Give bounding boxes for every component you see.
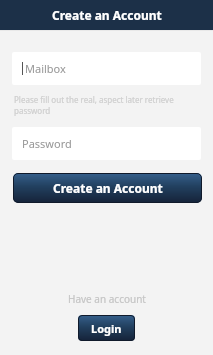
button[interactable]: Login <box>78 315 135 341</box>
button[interactable]: Mailbox <box>12 52 201 85</box>
button[interactable]: Have an account <box>68 292 146 306</box>
staticText: Create an Account <box>52 7 162 23</box>
staticText: Please fill out the real, aspect later r… <box>14 94 174 116</box>
staticText: Mailbox <box>25 61 66 76</box>
staticText: Create an Account <box>53 180 163 196</box>
staticText: Password <box>22 136 72 151</box>
staticText: Login <box>91 321 122 336</box>
button[interactable]: Create an Account <box>13 173 202 203</box>
button[interactable]: Password <box>12 127 201 160</box>
